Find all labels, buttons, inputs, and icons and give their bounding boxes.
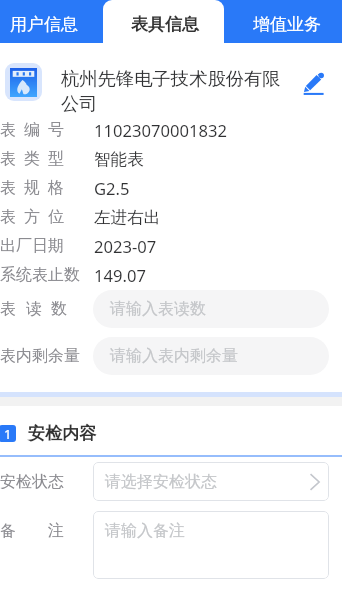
staticText: 杭州先锋电子技术股份有限公司 [61,67,287,116]
staticText: 类 [24,149,40,169]
staticText: 方 [24,207,40,227]
staticText: 备 [0,521,16,541]
staticText: 11023070001832 [94,119,227,141]
staticText: 请输入表内剩余量 [110,346,238,366]
staticText: 表 [0,178,16,198]
staticText: 型 [48,149,64,169]
staticText: 请输入表读数 [110,299,206,319]
staticText: 左进右出 [94,207,161,228]
staticText: 系 [0,265,16,285]
staticText: G2.5 [94,177,130,199]
staticText: 1 [4,425,12,442]
staticText: 用户信息 [10,14,78,35]
staticText: 表 [0,120,16,140]
staticText: 止 [48,265,64,285]
staticText: 内 [16,346,32,366]
staticText: 表具信息 [131,14,199,35]
staticText: 安检内容 [28,423,96,444]
staticText: 剩 [32,346,48,366]
staticText: 统 [16,265,32,285]
staticText: 表 [32,265,48,285]
staticText: 日 [32,236,48,256]
button[interactable]: 用户信息 [0,0,103,43]
staticText: 厂 [16,236,32,256]
staticText: 请输入备注 [105,521,185,541]
staticText: 安 [0,472,16,492]
staticText: 数 [51,299,67,319]
staticText: 量 [64,346,67,366]
button[interactable]: 请选择安检状态 [93,462,329,501]
staticText: 注 [48,521,64,541]
staticText: 态 [48,472,64,492]
staticText: 格 [48,178,64,198]
staticText: 表 [0,207,16,227]
staticText: 智能表 [94,149,144,170]
staticText: 表 [0,149,16,169]
button[interactable]: Edit [298,67,330,99]
button[interactable]: 请输入表内剩余量 [93,337,329,375]
staticText: 规 [24,178,40,198]
button[interactable]: 增值业务 [224,0,342,43]
staticText: 状 [32,472,48,492]
staticText: 2023-07 [94,235,157,257]
staticText: 请选择安检状态 [105,472,217,492]
button[interactable]: 请输入表读数 [93,290,329,328]
staticText: 出 [0,236,16,256]
staticText: 检 [16,472,32,492]
staticText: 表 [0,346,16,366]
staticText: 编 [24,120,40,140]
staticText: 位 [48,207,64,227]
button[interactable]: 请输入备注 [93,511,329,579]
staticText: 期 [48,236,64,256]
staticText: 余 [48,346,64,366]
staticText: 表 [0,299,16,319]
staticText: 149.07 [94,264,146,286]
button[interactable]: 表具信息 [103,0,224,43]
staticText: 号 [48,120,64,140]
staticText: 读 [26,299,42,319]
staticText: 增值业务 [253,14,321,35]
